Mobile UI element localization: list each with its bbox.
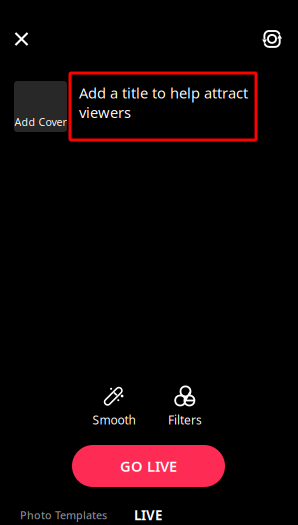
button[interactable]: Flip camera bbox=[252, 19, 292, 59]
button[interactable]: LIVE bbox=[125, 504, 171, 525]
staticText: Add a title to help attract viewers bbox=[79, 83, 248, 122]
button[interactable]: Smooth bbox=[79, 385, 149, 428]
staticText: Filters bbox=[168, 412, 202, 428]
button[interactable]: Add Cover bbox=[14, 81, 67, 132]
staticText: GO LIVE bbox=[120, 456, 177, 476]
button[interactable]: Add a title to help attract viewers bbox=[70, 73, 256, 140]
staticText: Smooth bbox=[92, 412, 135, 428]
button[interactable]: Close bbox=[1, 19, 41, 59]
button[interactable]: Photo Templates bbox=[14, 504, 125, 525]
staticText: LIVE bbox=[134, 506, 162, 524]
staticText: Add Cover bbox=[14, 115, 66, 129]
button[interactable]: GO LIVE bbox=[72, 445, 225, 487]
button[interactable]: Filters bbox=[150, 385, 220, 428]
staticText: Photo Templates bbox=[20, 508, 107, 522]
